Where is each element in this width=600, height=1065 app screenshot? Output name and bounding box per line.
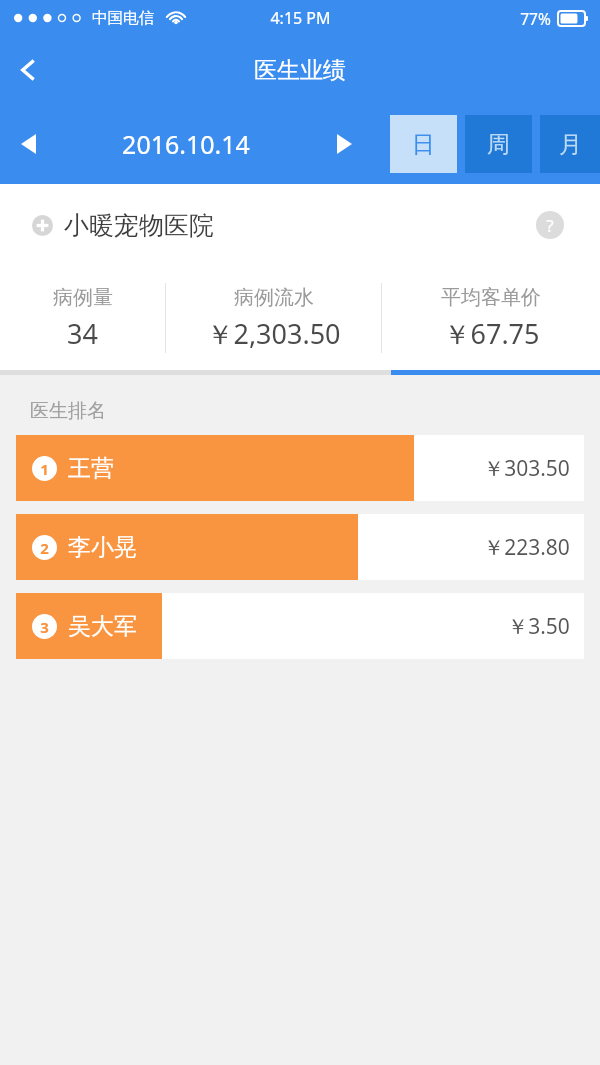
button[interactable]: 日: [390, 115, 457, 173]
staticText: ￥2,303.50: [206, 315, 341, 352]
staticText: 3: [40, 617, 49, 637]
button[interactable]: 3: [16, 593, 584, 659]
staticText: 李小晃: [68, 533, 137, 562]
staticText: ?: [546, 214, 554, 237]
staticText: 77%: [520, 8, 551, 29]
staticText: 病例流水: [234, 285, 314, 310]
staticText: ￥223.80: [483, 533, 570, 562]
button[interactable]: Help: [535, 210, 565, 240]
button[interactable]: Next day: [316, 116, 372, 172]
button[interactable]: 1: [16, 435, 584, 501]
staticText: 4:15 PM: [270, 7, 331, 29]
button[interactable]: 周: [465, 115, 532, 173]
staticText: 吴大军: [68, 612, 137, 641]
staticText: ￥67.75: [443, 315, 540, 352]
staticText: 1: [40, 459, 49, 479]
staticText: 小暖宠物医院: [64, 210, 214, 241]
staticText: 医生业绩: [254, 56, 346, 85]
staticText: 病例量: [53, 285, 113, 310]
staticText: 日: [412, 130, 435, 159]
button[interactable]: 小暖宠物医院: [32, 210, 214, 241]
staticText: 王营: [68, 454, 114, 483]
button[interactable]: Previous day: [0, 116, 56, 172]
button[interactable]: 2: [16, 514, 584, 580]
staticText: ￥303.50: [483, 454, 570, 483]
staticText: 2: [40, 538, 49, 558]
staticText: 月: [559, 130, 582, 159]
button[interactable]: 月: [540, 115, 600, 173]
button[interactable]: Back: [0, 42, 56, 98]
staticText: 34: [67, 315, 98, 352]
staticText: ￥3.50: [507, 612, 570, 641]
staticText: 2016.10.14: [122, 127, 250, 161]
staticText: 中国电信: [92, 8, 154, 28]
staticText: 周: [487, 130, 510, 159]
staticText: 医生排名: [30, 399, 106, 423]
staticText: 平均客单价: [441, 285, 541, 310]
